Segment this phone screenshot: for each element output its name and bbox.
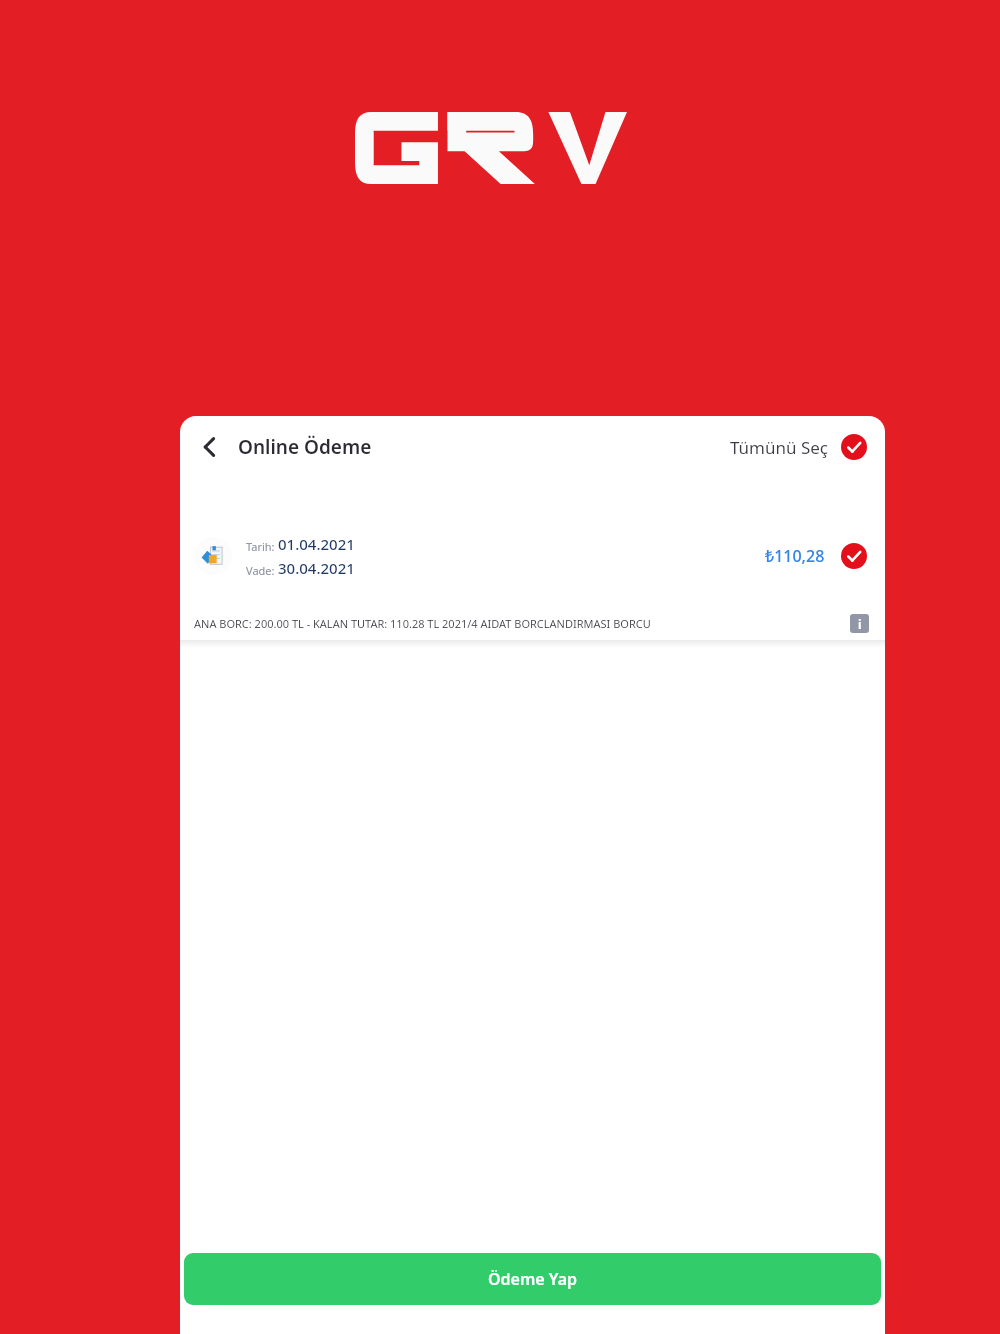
staticText: Online Ödeme [238, 434, 372, 460]
staticText: i [858, 616, 862, 632]
staticText: Tümünü Seç [730, 436, 829, 459]
staticText: ANA BORC: 200.00 TL - KALAN TUTAR: 110.2… [194, 616, 651, 631]
staticText: ₺110,28 [765, 545, 825, 567]
staticText: 30.04.2021 [278, 558, 355, 578]
staticText: Vade: [246, 563, 278, 578]
staticText: Tarih: [246, 539, 278, 554]
staticText: Ödeme Yap [488, 1268, 578, 1290]
button[interactable]: Tarih: [180, 524, 885, 588]
button[interactable]: Tümünü Seç [841, 434, 867, 460]
button[interactable]: Bilgi [850, 614, 869, 633]
button[interactable]: Tümünü Seç [730, 434, 867, 460]
button[interactable]: Seç [841, 543, 867, 569]
button[interactable]: Back [190, 427, 230, 467]
button[interactable]: Ödeme Yap [184, 1253, 881, 1305]
staticText: 01.04.2021 [278, 534, 355, 554]
button[interactable]: ANA BORC: 200.00 TL - KALAN TUTAR: 110.2… [180, 606, 885, 640]
